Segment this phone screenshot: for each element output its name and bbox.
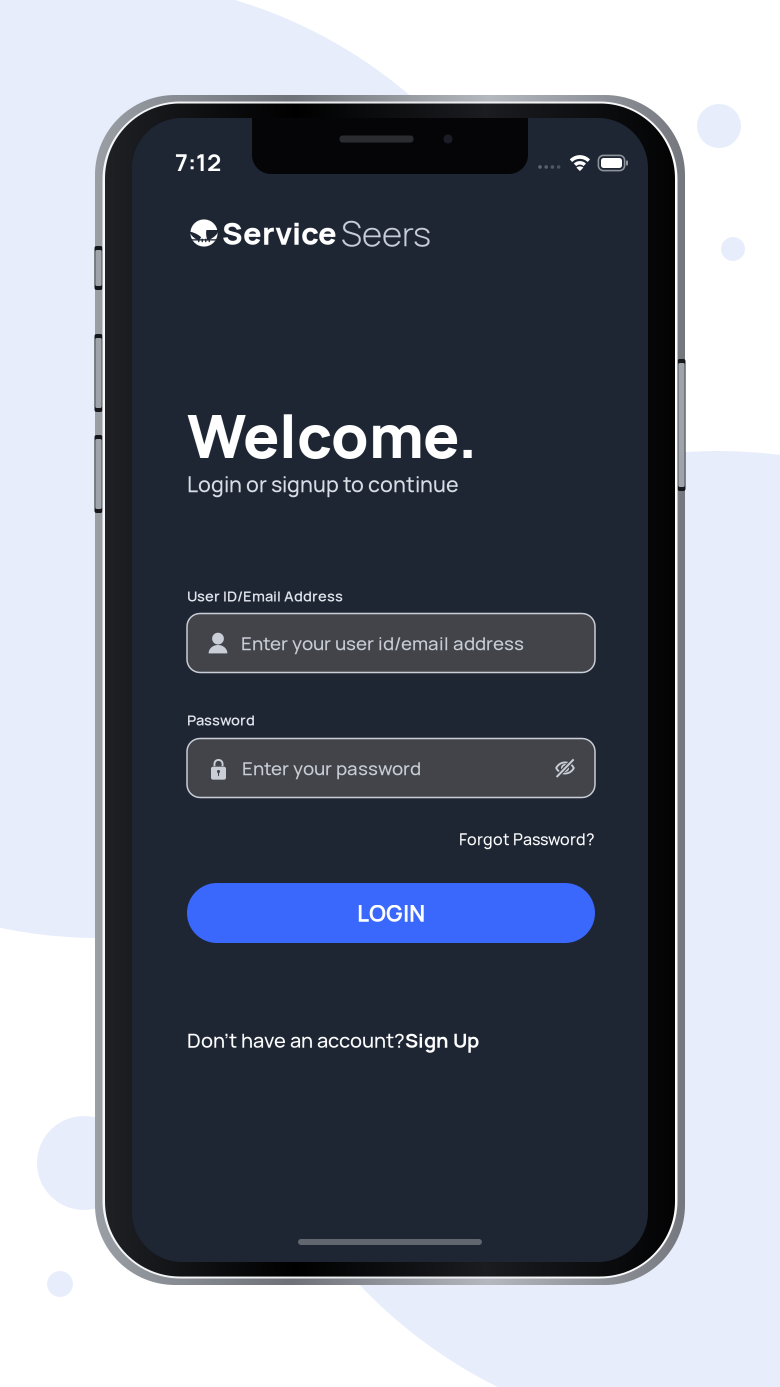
- button[interactable]: Sign Up: [405, 1026, 479, 1054]
- staticText: Seers: [341, 209, 431, 257]
- staticText: Enter your password: [242, 755, 421, 781]
- staticText: Login or signup to continue: [187, 469, 459, 498]
- staticText: LOGIN: [357, 897, 425, 928]
- staticText: Enter your user id/email address: [241, 630, 524, 656]
- staticText: User ID/Email Address: [187, 586, 343, 606]
- staticText: Password: [187, 710, 255, 730]
- staticText: Welcome.: [187, 394, 477, 476]
- staticText: 7:12: [175, 146, 221, 178]
- staticText: Don't have an account?: [187, 1026, 405, 1054]
- staticText: Service: [222, 212, 337, 254]
- button[interactable]: Enter your user id/email address: [187, 613, 595, 672]
- button[interactable]: Enter your password: [187, 738, 595, 797]
- staticText: Sign Up: [405, 1026, 479, 1054]
- staticText: Forgot Password?: [459, 828, 595, 850]
- button[interactable]: LOGIN: [187, 883, 595, 943]
- button[interactable]: Forgot Password?: [459, 824, 595, 854]
